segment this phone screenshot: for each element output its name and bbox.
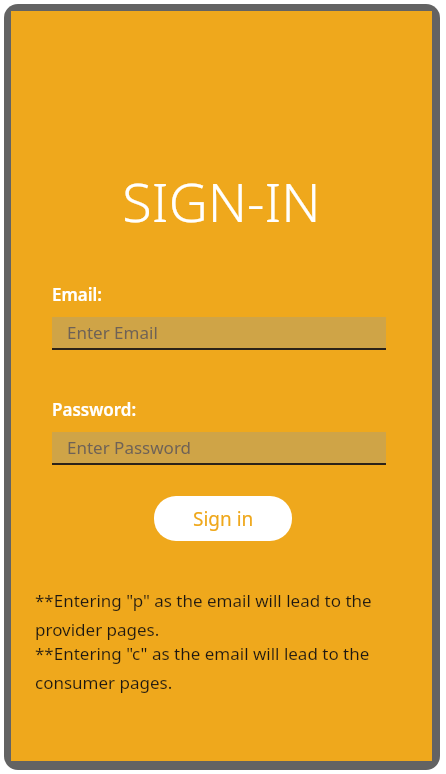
staticText: **Entering "p" as the email will lead to…: [35, 589, 395, 641]
staticText: **Entering "c" as the email will lead to…: [35, 642, 395, 694]
staticText: Enter Email: [67, 321, 158, 344]
staticText: Enter Password: [67, 436, 192, 459]
staticText: Sign in: [193, 506, 254, 532]
staticText: SIGN-IN: [11, 164, 432, 238]
staticText: Password:: [52, 398, 137, 421]
button[interactable]: Enter Password: [52, 432, 386, 465]
staticText: Email:: [52, 283, 103, 306]
button[interactable]: Enter Email: [52, 317, 386, 350]
button[interactable]: Sign in: [154, 496, 292, 541]
